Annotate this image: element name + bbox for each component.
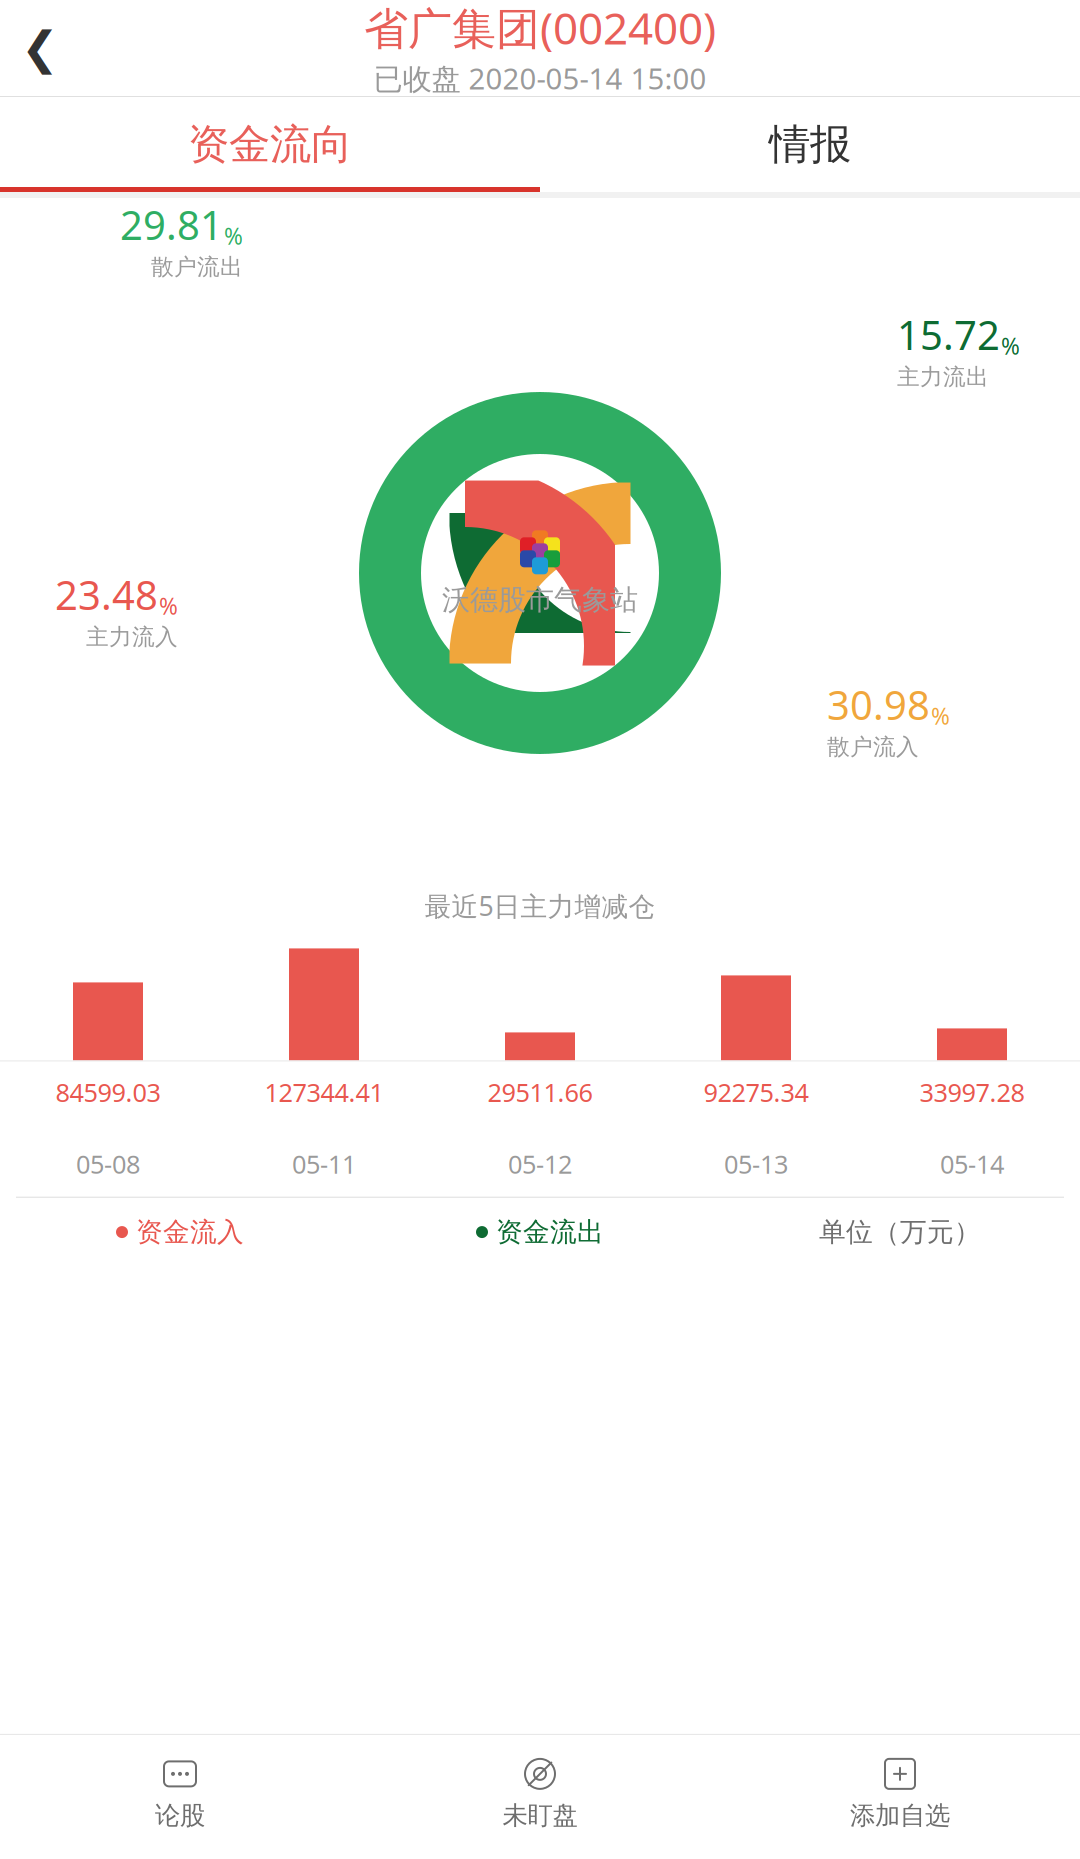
- button[interactable]: 添加自选: [720, 1747, 1080, 1841]
- button[interactable]: 情报: [540, 99, 1080, 189]
- staticText: 29511.66: [487, 1075, 592, 1109]
- staticText: 92275.34: [703, 1075, 808, 1109]
- staticText: 资金流入: [136, 1216, 244, 1248]
- staticText: %: [224, 221, 243, 251]
- staticText: ❮: [21, 22, 59, 74]
- staticText: 情报: [769, 119, 851, 170]
- staticText: 散户流出: [151, 253, 243, 281]
- staticText: 已收盘 2020-05-14 15:00: [373, 59, 706, 98]
- staticText: 论股: [155, 1800, 205, 1831]
- staticText: 05-08: [76, 1147, 140, 1181]
- staticText: 单位（万元）: [819, 1216, 981, 1248]
- button[interactable]: 论股: [0, 1747, 360, 1841]
- staticText: %: [931, 701, 950, 731]
- staticText: 30.98: [827, 678, 930, 731]
- staticText: %: [159, 591, 178, 621]
- staticText: 05-13: [724, 1147, 788, 1181]
- staticText: 05-12: [508, 1147, 572, 1181]
- staticText: 省广集团(002400): [364, 0, 716, 57]
- staticText: 29.81: [120, 198, 223, 251]
- staticText: 散户流入: [827, 733, 919, 761]
- staticText: 15.72: [897, 308, 1000, 361]
- staticText: %: [1001, 331, 1020, 361]
- button[interactable]: 资金流向: [0, 99, 540, 189]
- staticText: 05-14: [940, 1147, 1004, 1181]
- staticText: 未盯盘: [502, 1800, 577, 1831]
- staticText: 资金流向: [188, 119, 352, 170]
- staticText: 添加自选: [850, 1800, 950, 1831]
- staticText: 主力流出: [897, 363, 989, 391]
- button[interactable]: 未盯盘: [360, 1747, 720, 1841]
- staticText: 33997.28: [919, 1075, 1024, 1109]
- staticText: 23.48: [55, 568, 158, 621]
- staticText: 127344.41: [264, 1075, 383, 1109]
- staticText: 最近5日主力增减仓: [424, 888, 655, 923]
- staticText: 资金流出: [496, 1216, 604, 1248]
- staticText: 05-11: [292, 1147, 356, 1181]
- staticText: 84599.03: [55, 1075, 160, 1109]
- staticText: 主力流入: [86, 623, 178, 651]
- staticText: 沃德股市气象站: [442, 583, 638, 617]
- button[interactable]: Back: [0, 13, 80, 83]
